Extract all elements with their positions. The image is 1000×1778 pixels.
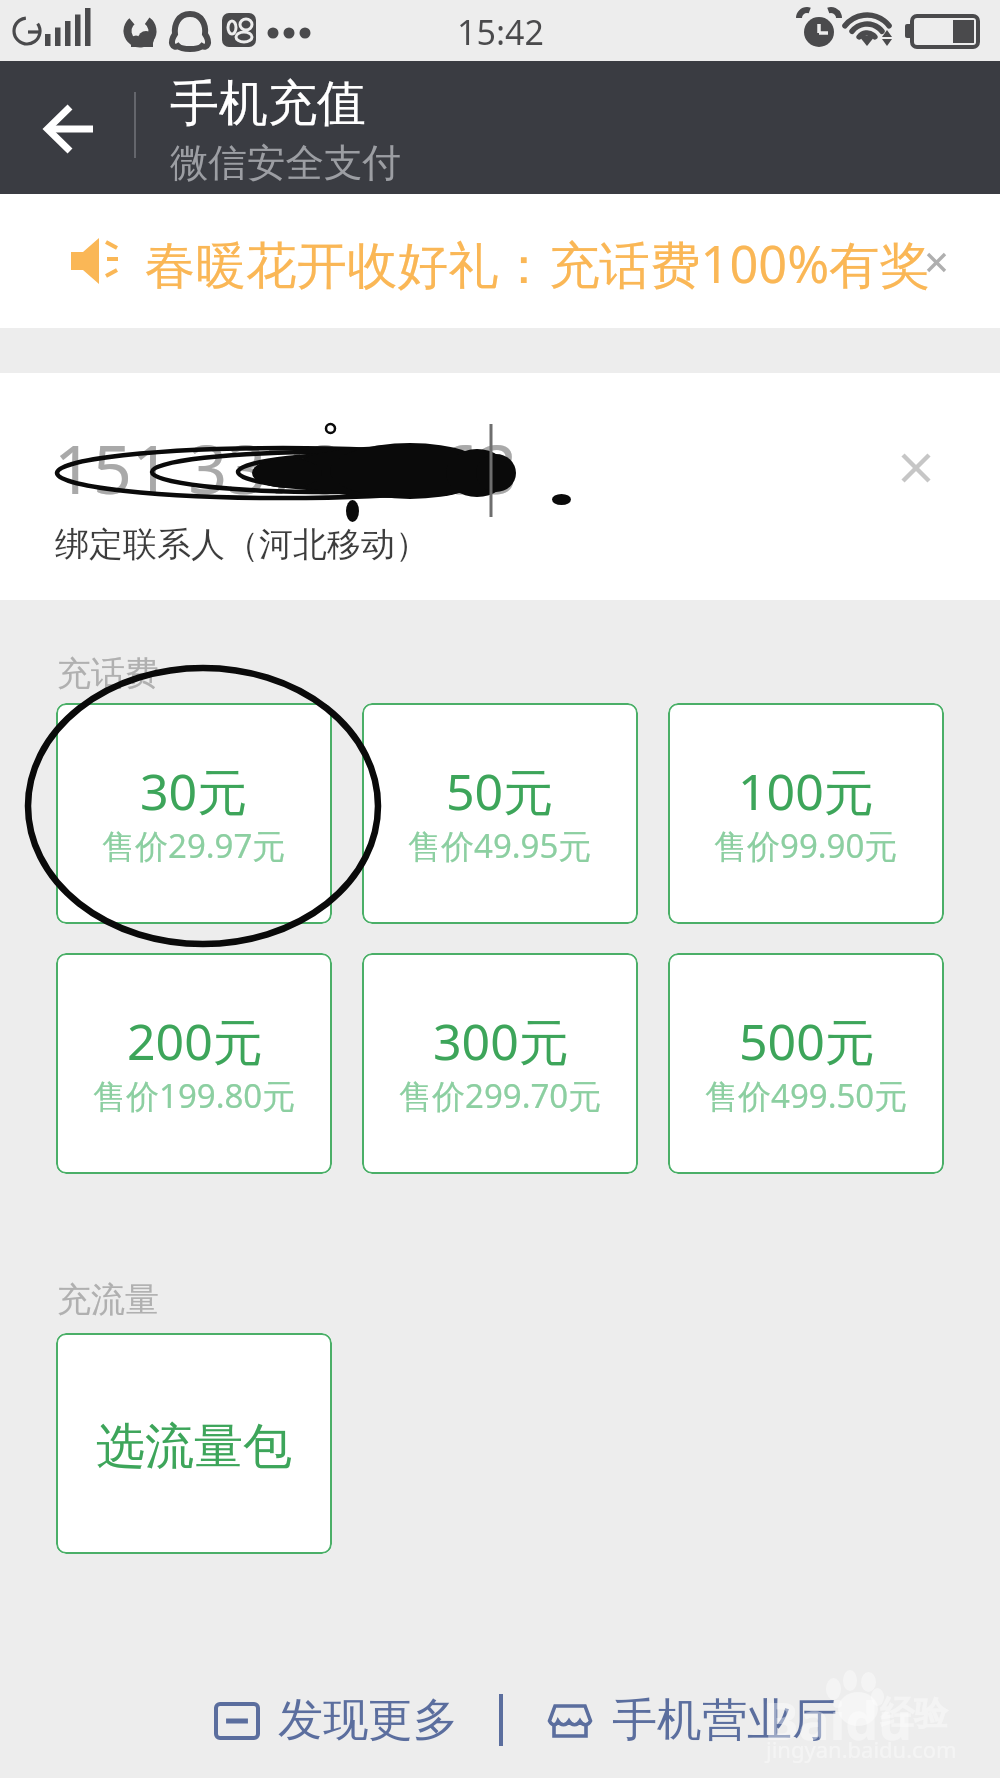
staticText: 售价299.70元	[399, 1073, 602, 1118]
staticText: jingyan.baidu.com	[766, 1734, 957, 1764]
button[interactable]: 100元	[668, 703, 944, 924]
staticText: 50元	[446, 757, 554, 825]
staticText: 手机充值	[170, 73, 366, 135]
staticText: 售价99.90元	[714, 823, 898, 868]
staticText: 绑定联系人（河北移动）	[55, 523, 429, 566]
button[interactable]: 发现更多	[210, 1682, 464, 1759]
staticText: 200元	[127, 1007, 263, 1075]
staticText: 500元	[739, 1007, 875, 1075]
staticText: Baidu	[764, 1684, 912, 1755]
staticText: 选流量包	[96, 1416, 292, 1478]
staticText: 春暖花开收好礼：充话费100%有奖	[145, 229, 931, 298]
button[interactable]: 30元	[56, 703, 332, 924]
staticText: 售价199.80元	[93, 1073, 296, 1118]
button[interactable]: 200元	[56, 953, 332, 1174]
button[interactable]: 春暖花开收好礼：充话费100%有奖	[0, 194, 1000, 328]
staticText: 售价499.50元	[705, 1073, 908, 1118]
staticText: 300元	[433, 1007, 569, 1075]
staticText: 30元	[140, 757, 248, 825]
staticText: 100元	[738, 757, 874, 825]
staticText: 微信安全支付	[170, 139, 401, 188]
button[interactable]: Back	[0, 61, 130, 194]
button[interactable]: 手机营业厅	[542, 1682, 843, 1759]
staticText: 售价29.97元	[102, 823, 286, 868]
button[interactable]: Close banner	[922, 248, 951, 277]
button[interactable]: 50元	[362, 703, 638, 924]
staticText: 发现更多	[278, 1692, 458, 1749]
button[interactable]: 选流量包	[56, 1333, 332, 1554]
staticText: 售价49.95元	[408, 823, 592, 868]
staticText: 151 3378 9563	[54, 421, 518, 514]
button[interactable]: 300元	[362, 953, 638, 1174]
staticText: 充话费	[57, 652, 159, 695]
staticText: 充流量	[57, 1278, 159, 1321]
button[interactable]: 500元	[668, 953, 944, 1174]
staticText: 15:42	[457, 9, 544, 55]
staticText: 经验	[880, 1692, 948, 1735]
staticText: 手机营业厅	[612, 1692, 837, 1749]
button[interactable]: Clear number	[890, 442, 942, 494]
